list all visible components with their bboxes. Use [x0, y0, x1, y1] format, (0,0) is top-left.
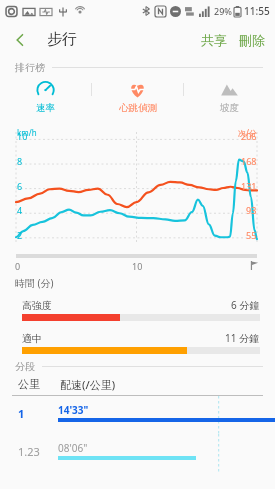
staticText: 4: [17, 204, 23, 216]
staticText: 步行: [47, 30, 77, 49]
staticText: 心跳偵測: [119, 102, 157, 114]
staticText: 2: [17, 229, 23, 241]
staticText: 時間 (分): [15, 276, 54, 290]
staticText: 公里: [18, 377, 40, 391]
staticText: 1.23: [18, 444, 40, 459]
staticText: 排行榜: [15, 61, 45, 74]
staticText: 168: [241, 155, 257, 167]
staticText: km/h: [17, 127, 37, 138]
staticText: 11 分鐘: [225, 331, 260, 345]
button[interactable]: 高強度: [22, 298, 260, 321]
staticText: 高強度: [22, 299, 52, 312]
button[interactable]: 坡度: [184, 78, 275, 126]
button[interactable]: 1: [0, 396, 275, 434]
staticText: 6: [17, 180, 23, 192]
staticText: 配速(/公里): [60, 377, 116, 392]
staticText: 共享: [201, 32, 227, 48]
button[interactable]: 1.23: [0, 434, 275, 472]
staticText: 刪除: [239, 32, 265, 48]
button[interactable]: 刪除: [234, 26, 275, 54]
staticText: 8: [17, 155, 23, 167]
button[interactable]: 速率: [0, 78, 91, 126]
staticText: 29%: [214, 5, 232, 17]
staticText: 1: [18, 406, 25, 421]
staticText: 適中: [22, 332, 42, 345]
staticText: 10: [132, 260, 143, 272]
staticText: 14'33": [58, 403, 89, 417]
staticText: 131: [241, 180, 257, 192]
button[interactable]: 心跳偵測: [92, 78, 183, 126]
button[interactable]: 共享: [194, 26, 234, 54]
staticText: 93: [246, 204, 257, 216]
staticText: 坡度: [220, 102, 239, 114]
staticText: 10: [17, 130, 28, 142]
button[interactable]: Back: [6, 26, 34, 54]
staticText: 206: [241, 130, 257, 142]
staticText: 55: [246, 229, 257, 241]
staticText: 0: [15, 260, 21, 272]
staticText: 速率: [36, 102, 55, 114]
staticText: 08'06": [58, 441, 88, 455]
staticText: 6 分鐘: [231, 298, 260, 312]
button[interactable]: 適中: [22, 331, 260, 354]
staticText: 11:55: [244, 4, 270, 18]
staticText: 次/分: [238, 127, 257, 138]
staticText: 分段: [15, 360, 35, 373]
